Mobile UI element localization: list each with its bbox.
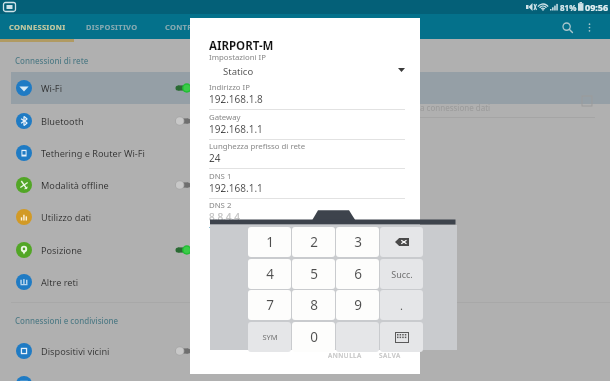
staticText: Connessioni e condivisione (15, 315, 119, 326)
staticText: 8 (310, 296, 318, 314)
button[interactable]: Modalità offline (11, 169, 610, 201)
button[interactable]: Bluetooth (11, 105, 610, 137)
button[interactable]: 6 (336, 259, 379, 289)
button[interactable]: . (380, 290, 423, 320)
staticText: AIRPORT-M (209, 38, 274, 54)
staticText: 3 (354, 233, 362, 251)
button[interactable]: Posizione (11, 234, 610, 266)
staticText: 192.168.1.8 (209, 92, 263, 106)
staticText: DISPOSITIVO (86, 22, 138, 32)
button[interactable]: Lunghezza prefisso di rete (209, 141, 405, 169)
button[interactable]: 3 (336, 227, 379, 257)
staticText: Indirizzo IP (209, 82, 250, 93)
staticText: a connessione dati (420, 102, 491, 113)
staticText: Altre reti (41, 276, 79, 289)
button[interactable]: Dispositivi vicini (11, 335, 610, 367)
staticText: 81% (560, 2, 577, 13)
staticText: . (400, 298, 403, 313)
button[interactable]: 5 (292, 259, 335, 289)
button[interactable]: Screen Mirroring (11, 368, 610, 381)
button[interactable]: 9 (336, 290, 379, 320)
button[interactable]: Backspace (380, 227, 423, 257)
button[interactable]: 0 (292, 322, 335, 352)
button[interactable]: CONNESSIONI (0, 14, 74, 39)
button[interactable]: 7 (248, 290, 291, 320)
staticText: 1 (266, 233, 274, 251)
staticText: Connessioni di rete (15, 55, 89, 66)
staticText: 7 (266, 296, 274, 314)
staticText: 9 (354, 296, 362, 314)
button[interactable]: CONTROLLI (150, 14, 226, 39)
button[interactable]: SALVA (379, 351, 401, 361)
staticText: Tethering e Router Wi-Fi (41, 147, 145, 160)
staticText: 24 (209, 151, 221, 165)
button[interactable]: Search (556, 16, 578, 38)
staticText: 192.168.1.1 (209, 122, 263, 136)
button[interactable]: More options (578, 16, 600, 38)
button[interactable]: 8 (292, 290, 335, 320)
staticText: 2 (310, 233, 318, 251)
button[interactable]: Succ. (380, 259, 423, 289)
button[interactable]: Wi-Fi (11, 72, 610, 104)
button[interactable]: Altre reti (11, 266, 610, 298)
staticText: 6 (354, 265, 362, 283)
staticText: DNS 1 (209, 171, 232, 182)
staticText: CONNESSIONI (9, 22, 66, 32)
staticText: Dispositivi vicini (41, 345, 110, 358)
staticText: CONTROLLI (165, 22, 211, 32)
button[interactable]: DISPOSITIVO (74, 14, 150, 39)
button[interactable]: 4 (248, 259, 291, 289)
button[interactable]: Switch keyboard (380, 322, 423, 352)
button[interactable]: Gateway (209, 112, 405, 140)
staticText: ANNULLA (328, 351, 362, 360)
staticText: 5 (310, 265, 318, 283)
staticText: Utilizzo dati (41, 211, 92, 224)
staticText: Gateway (209, 112, 241, 123)
staticText: Statico (223, 65, 254, 78)
staticText: SALVA (379, 351, 401, 360)
button[interactable]: a connessione dati (420, 98, 600, 116)
staticText: 0 (310, 328, 318, 346)
staticText: Posizione (41, 244, 82, 257)
staticText: 09:56 (585, 1, 609, 13)
staticText: 192.168.1.1 (209, 181, 263, 195)
button[interactable]: Statico (209, 62, 405, 78)
staticText: 8.8.4.4 (209, 210, 240, 224)
button[interactable]: 2 (292, 227, 335, 257)
staticText: Modalità offline (41, 179, 109, 192)
staticText: Wi-Fi (41, 82, 63, 95)
staticText: DNS 2 (209, 200, 232, 211)
staticText: 4 (266, 265, 274, 283)
staticText: Lunghezza prefisso di rete (209, 141, 306, 152)
button[interactable]: DNS 2 (209, 200, 405, 228)
button[interactable]: 1 (248, 227, 291, 257)
button[interactable]: DNS 1 (209, 171, 405, 199)
staticText: Impostazioni IP (209, 52, 266, 63)
staticText: SYM (262, 332, 278, 342)
button[interactable]: Utilizzo dati (11, 201, 610, 233)
button[interactable]: Tethering e Router Wi-Fi (11, 137, 610, 169)
staticText: Bluetooth (41, 115, 84, 128)
button[interactable]: SYM (248, 322, 291, 352)
button[interactable]: ANNULLA (328, 351, 362, 361)
button[interactable]: Indirizzo IP (209, 82, 405, 110)
staticText: Succ. (391, 268, 413, 280)
